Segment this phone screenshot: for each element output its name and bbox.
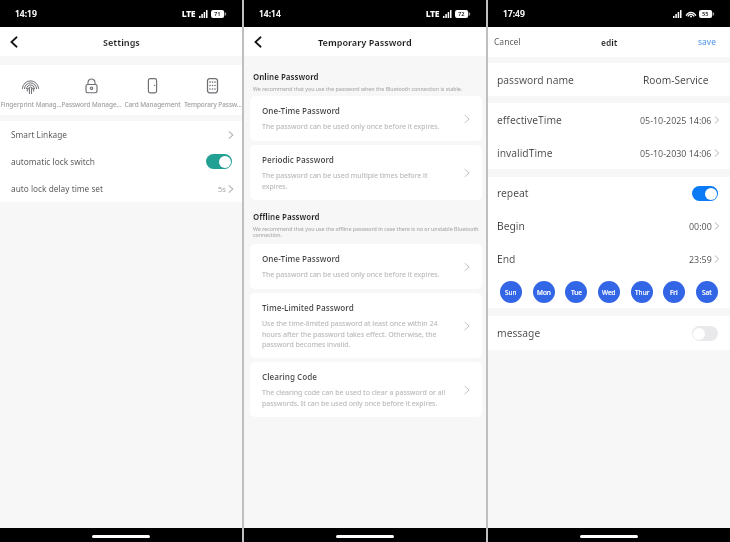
button[interactable]: Cancel bbox=[488, 29, 529, 55]
staticText: Card Management bbox=[124, 100, 181, 109]
staticText: Sat bbox=[702, 288, 712, 297]
staticText: Wed bbox=[602, 288, 616, 297]
button[interactable]: save bbox=[690, 29, 730, 55]
staticText: Clearing Code bbox=[262, 371, 318, 382]
staticText: The password can be used only once befor… bbox=[262, 270, 440, 280]
button[interactable]: Tue bbox=[565, 281, 587, 303]
staticText: Time-Limited Password bbox=[262, 302, 354, 313]
staticText: Temporary Password bbox=[318, 36, 412, 48]
button[interactable]: Thur bbox=[631, 281, 653, 303]
button[interactable]: repeat bbox=[488, 177, 730, 209]
staticText: Settings bbox=[103, 36, 140, 48]
button[interactable]: Clearing Code bbox=[250, 362, 482, 417]
staticText: invalidTime bbox=[497, 146, 553, 160]
staticText: 05-10-2025 14:06 bbox=[640, 114, 712, 126]
staticText: Mon bbox=[537, 288, 551, 297]
staticText: Begin bbox=[497, 219, 525, 233]
button[interactable] bbox=[206, 154, 232, 169]
staticText: Online Password bbox=[253, 72, 319, 83]
button[interactable]: Password Manage… bbox=[61, 76, 122, 109]
button[interactable]: invalidTime bbox=[488, 136, 730, 169]
button[interactable]: Wed bbox=[598, 281, 620, 303]
staticText: 23:59 bbox=[689, 253, 712, 265]
button[interactable]: message bbox=[488, 316, 730, 350]
staticText: 72 bbox=[458, 10, 465, 18]
button[interactable]: Sun bbox=[500, 281, 522, 303]
staticText: Fri bbox=[670, 288, 678, 297]
staticText: Tue bbox=[571, 288, 582, 297]
staticText: One-Time Password bbox=[262, 253, 340, 264]
button[interactable]: Periodic Password bbox=[250, 145, 482, 200]
staticText: The password can be used only once befor… bbox=[262, 122, 440, 132]
button[interactable]: Sat bbox=[696, 281, 718, 303]
button[interactable]: automatic lock switch bbox=[0, 148, 242, 175]
staticText: The clearing code can be used to clear a… bbox=[262, 388, 446, 408]
staticText: Thur bbox=[635, 288, 650, 297]
staticText: End bbox=[497, 252, 516, 266]
button[interactable]: Begin bbox=[488, 209, 730, 242]
staticText: 05-10-2030 14:06 bbox=[640, 147, 712, 159]
button[interactable]: Mon bbox=[533, 281, 555, 303]
button[interactable]: Time-Limited Password bbox=[250, 293, 482, 358]
button[interactable]: One-Time Password bbox=[250, 96, 482, 141]
staticText: 55 bbox=[702, 10, 709, 18]
staticText: Smart Linkage bbox=[11, 129, 68, 140]
staticText: Room-Service bbox=[643, 73, 709, 87]
staticText: LTE bbox=[426, 8, 440, 19]
staticText: Sun bbox=[505, 288, 517, 297]
staticText: effectiveTime bbox=[497, 113, 562, 127]
staticText: We recommend that you use the password w… bbox=[253, 85, 463, 92]
button[interactable]: Card Management bbox=[122, 76, 183, 109]
staticText: 00:00 bbox=[689, 220, 712, 232]
button[interactable]: Fri bbox=[663, 281, 685, 303]
staticText: Cancel bbox=[494, 36, 521, 48]
button[interactable]: Back bbox=[245, 29, 271, 55]
staticText: Use the time-limited password at least o… bbox=[262, 319, 438, 349]
staticText: Fingerprint Manag… bbox=[0, 100, 61, 109]
staticText: 71 bbox=[214, 10, 221, 18]
button[interactable] bbox=[692, 326, 718, 341]
staticText: One-Time Password bbox=[262, 105, 340, 116]
staticText: automatic lock switch bbox=[11, 156, 95, 167]
staticText: password name bbox=[497, 73, 574, 87]
button[interactable]: Fingerprint Manag… bbox=[0, 76, 61, 109]
button[interactable]: auto lock delay time set bbox=[0, 175, 242, 202]
button[interactable]: Back bbox=[1, 29, 27, 55]
staticText: Offline Password bbox=[253, 212, 320, 223]
staticText: Periodic Password bbox=[262, 154, 334, 165]
staticText: Password Manage… bbox=[61, 100, 122, 109]
button[interactable]: effectiveTime bbox=[488, 103, 730, 136]
staticText: edit bbox=[601, 37, 618, 48]
staticText: We recommend that you use the offline pa… bbox=[253, 225, 479, 239]
staticText: LTE bbox=[182, 8, 196, 19]
button[interactable]: password name bbox=[488, 63, 730, 96]
staticText: 5s bbox=[218, 184, 226, 194]
staticText: 14:19 bbox=[15, 8, 37, 20]
button[interactable]: Temporary Passw… bbox=[183, 76, 242, 109]
staticText: The password can be used multiple times … bbox=[262, 171, 428, 191]
button[interactable]: One-Time Password bbox=[250, 244, 482, 289]
staticText: auto lock delay time set bbox=[11, 183, 104, 194]
button[interactable]: End bbox=[488, 242, 730, 275]
staticText: message bbox=[497, 326, 541, 340]
button[interactable]: Smart Linkage bbox=[0, 121, 242, 148]
staticText: save bbox=[698, 36, 716, 48]
staticText: 14:14 bbox=[259, 8, 281, 20]
staticText: 17:49 bbox=[503, 8, 525, 20]
button[interactable] bbox=[692, 186, 718, 201]
staticText: Temporary Passw… bbox=[184, 100, 242, 109]
staticText: repeat bbox=[497, 186, 529, 200]
